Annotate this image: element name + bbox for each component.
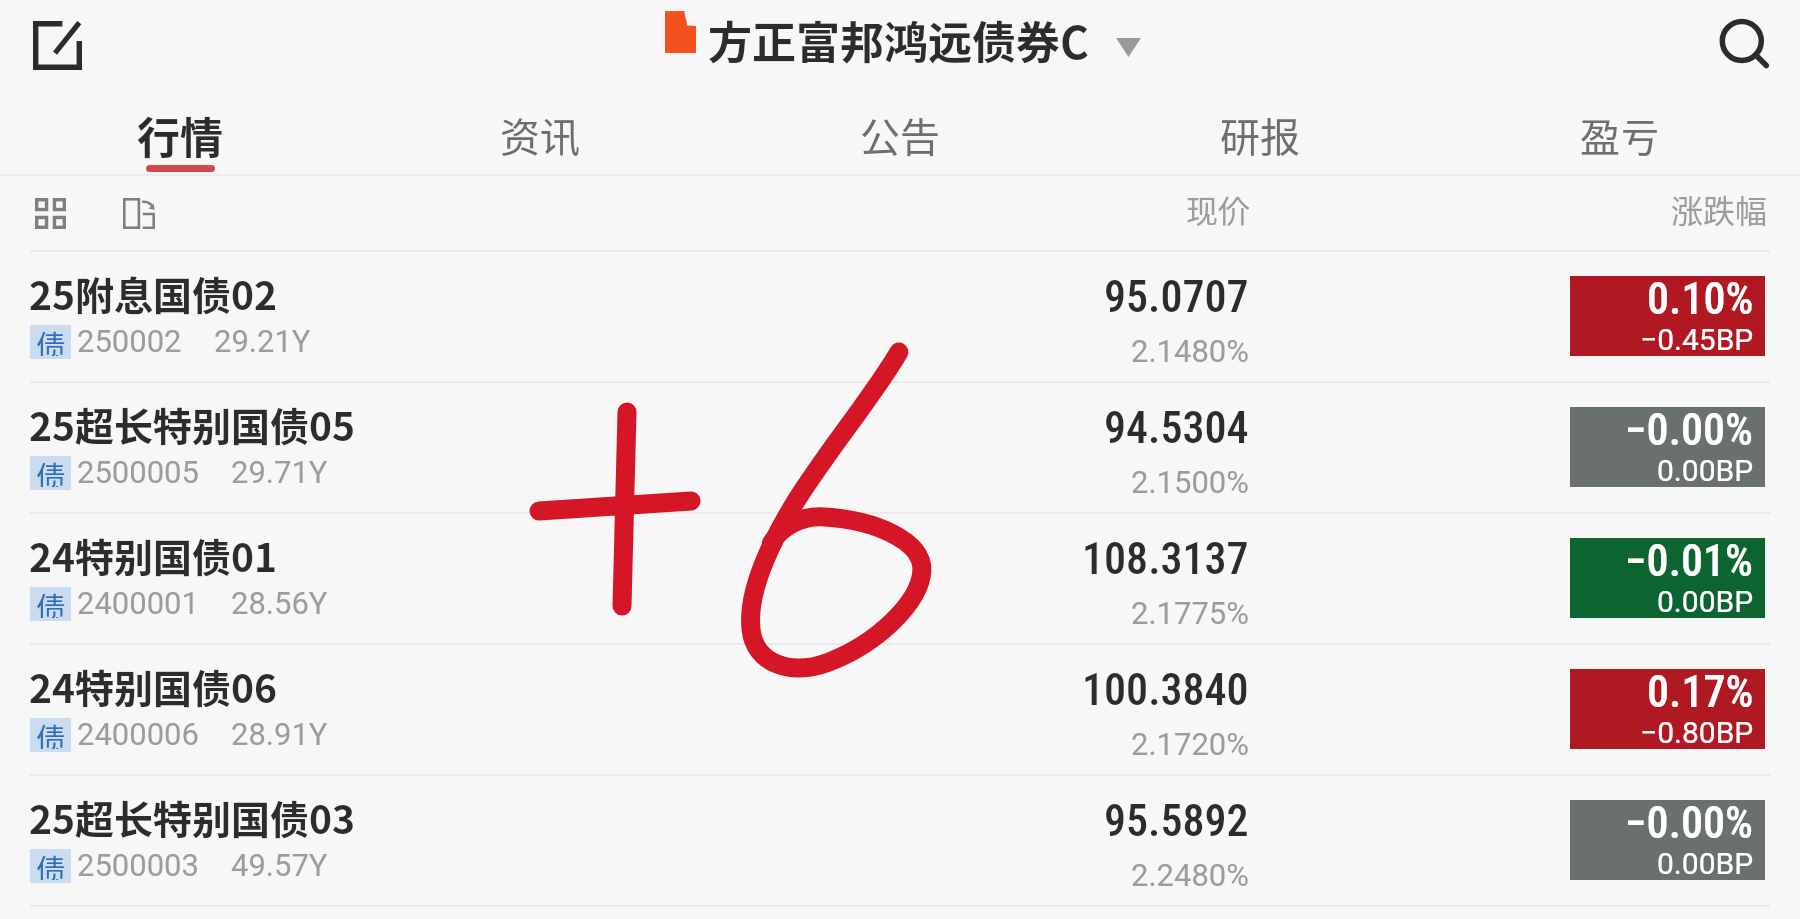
staticText: 100.3840: [1082, 664, 1249, 716]
staticText: 方正富邦鸿远债券C: [708, 8, 1089, 72]
button[interactable]: Edit: [12, 0, 102, 90]
staticText: 2.1720%: [1131, 726, 1249, 762]
staticText: 2.1480%: [1131, 333, 1249, 369]
staticText: 0.00BP: [1657, 846, 1754, 881]
staticText: 250002: [77, 323, 182, 359]
staticText: −0.80BP: [1640, 715, 1754, 750]
staticText: 2400001: [77, 585, 199, 621]
staticText: 2.1775%: [1131, 595, 1249, 631]
staticText: 49.57Y: [231, 847, 328, 883]
staticText: 94.5304: [1104, 402, 1249, 454]
staticText: 债: [36, 453, 66, 487]
staticText: 108.3137: [1082, 533, 1249, 585]
staticText: 28.91Y: [231, 716, 328, 752]
staticText: 盈亏: [1580, 106, 1660, 164]
button[interactable]: Search: [1697, 0, 1787, 90]
staticText: 25附息国债02: [29, 265, 278, 321]
staticText: 25超长特别国债05: [29, 396, 356, 452]
staticText: 24特别国债06: [29, 658, 278, 714]
button[interactable]: 25附息国债02: [0, 252, 1800, 383]
button[interactable]: Grid view: [20, 183, 81, 244]
staticText: 0.00BP: [1657, 584, 1754, 619]
button[interactable]: 行情: [0, 92, 360, 176]
staticText: −0.45BP: [1640, 322, 1754, 357]
staticText: 资讯: [500, 106, 580, 164]
staticText: 债: [36, 322, 66, 356]
staticText: 研报: [1220, 106, 1300, 164]
staticText: 2500005: [77, 454, 199, 490]
button[interactable]: 公告: [720, 92, 1080, 176]
staticText: 2.1500%: [1131, 464, 1249, 500]
button[interactable]: 25超长特别国债03: [0, 776, 1800, 907]
staticText: 涨跌幅: [1671, 186, 1768, 232]
staticText: 公告: [860, 106, 940, 164]
staticText: −0.00%: [1625, 404, 1754, 456]
staticText: 债: [36, 846, 66, 880]
staticText: 债: [36, 715, 66, 749]
staticText: 0.00BP: [1657, 453, 1754, 488]
staticText: 29.21Y: [214, 323, 311, 359]
staticText: 2400006: [77, 716, 199, 752]
button[interactable]: 盈亏: [1440, 92, 1800, 176]
staticText: −0.00%: [1625, 797, 1754, 849]
staticText: 2.2480%: [1131, 857, 1249, 893]
button[interactable]: Compare: [107, 182, 170, 245]
staticText: 行情: [137, 104, 223, 166]
staticText: 95.5892: [1104, 795, 1249, 847]
button[interactable]: 研报: [1080, 92, 1440, 176]
button[interactable]: 24特别国债06: [0, 645, 1800, 776]
staticText: 24特别国债01: [29, 527, 278, 583]
button[interactable]: 25超长特别国债05: [0, 383, 1800, 514]
staticText: 95.0707: [1104, 271, 1249, 323]
staticText: 债: [36, 584, 66, 618]
staticText: 28.56Y: [231, 585, 328, 621]
staticText: 29.71Y: [231, 454, 328, 490]
staticText: 现价: [1186, 186, 1251, 232]
staticText: 0.10%: [1647, 273, 1754, 325]
staticText: 25超长特别国债03: [29, 789, 356, 845]
staticText: 0.17%: [1647, 666, 1754, 718]
button[interactable]: 资讯: [360, 92, 720, 176]
button[interactable]: 方正富邦鸿远债券C, switch fund: [655, 4, 1151, 60]
staticText: −0.01%: [1625, 535, 1754, 587]
staticText: 2500003: [77, 847, 199, 883]
button[interactable]: 24特别国债01: [0, 514, 1800, 645]
